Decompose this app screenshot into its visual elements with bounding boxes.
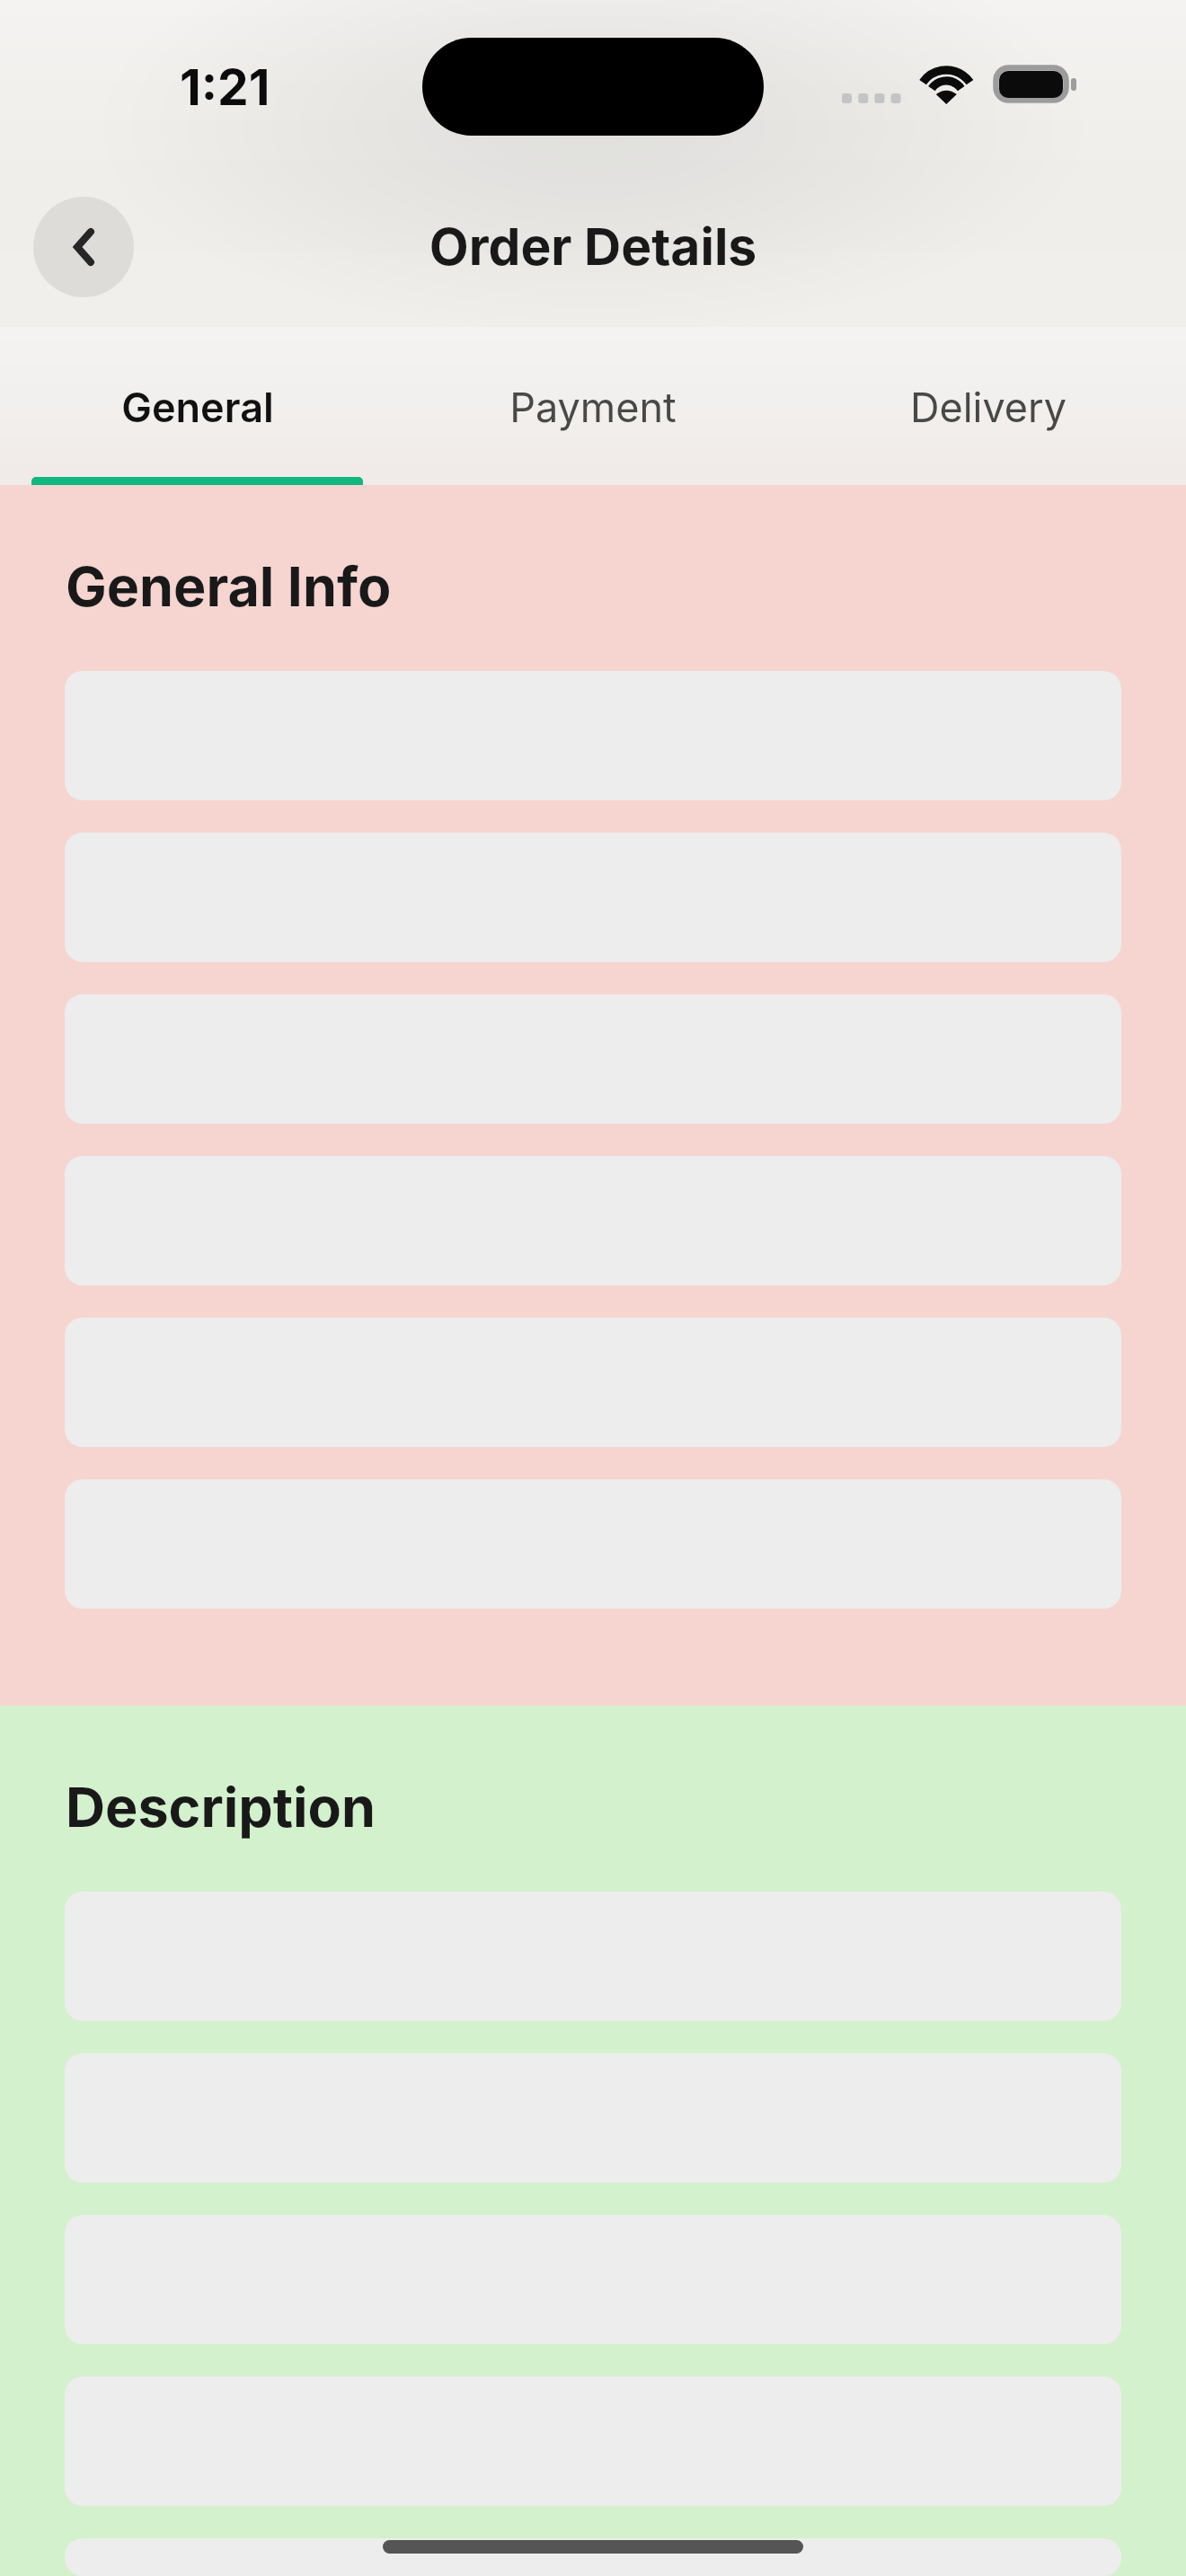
button[interactable]: General: [0, 383, 395, 541]
staticText: 1:21: [180, 57, 270, 118]
staticText: Order Details: [0, 216, 1186, 278]
button[interactable]: Back: [33, 197, 134, 297]
staticText: General: [0, 383, 395, 431]
button[interactable]: Payment: [395, 383, 791, 541]
button[interactable]: [65, 2538, 1121, 2576]
staticText: Payment: [395, 383, 791, 431]
button[interactable]: Delivery: [791, 383, 1186, 541]
staticText: Description: [66, 1774, 376, 1840]
staticText: General Info: [66, 553, 392, 620]
button[interactable]: [65, 2053, 1121, 2183]
staticText: Delivery: [791, 383, 1186, 431]
